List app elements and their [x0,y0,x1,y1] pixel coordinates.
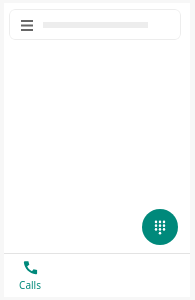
button[interactable]: Open navigation drawer [18,16,36,34]
staticText: Calls [19,278,41,292]
button[interactable]: Calls [4,254,56,297]
button[interactable]: Open dial pad [142,209,178,245]
button[interactable]: Open navigation drawer [9,9,181,40]
